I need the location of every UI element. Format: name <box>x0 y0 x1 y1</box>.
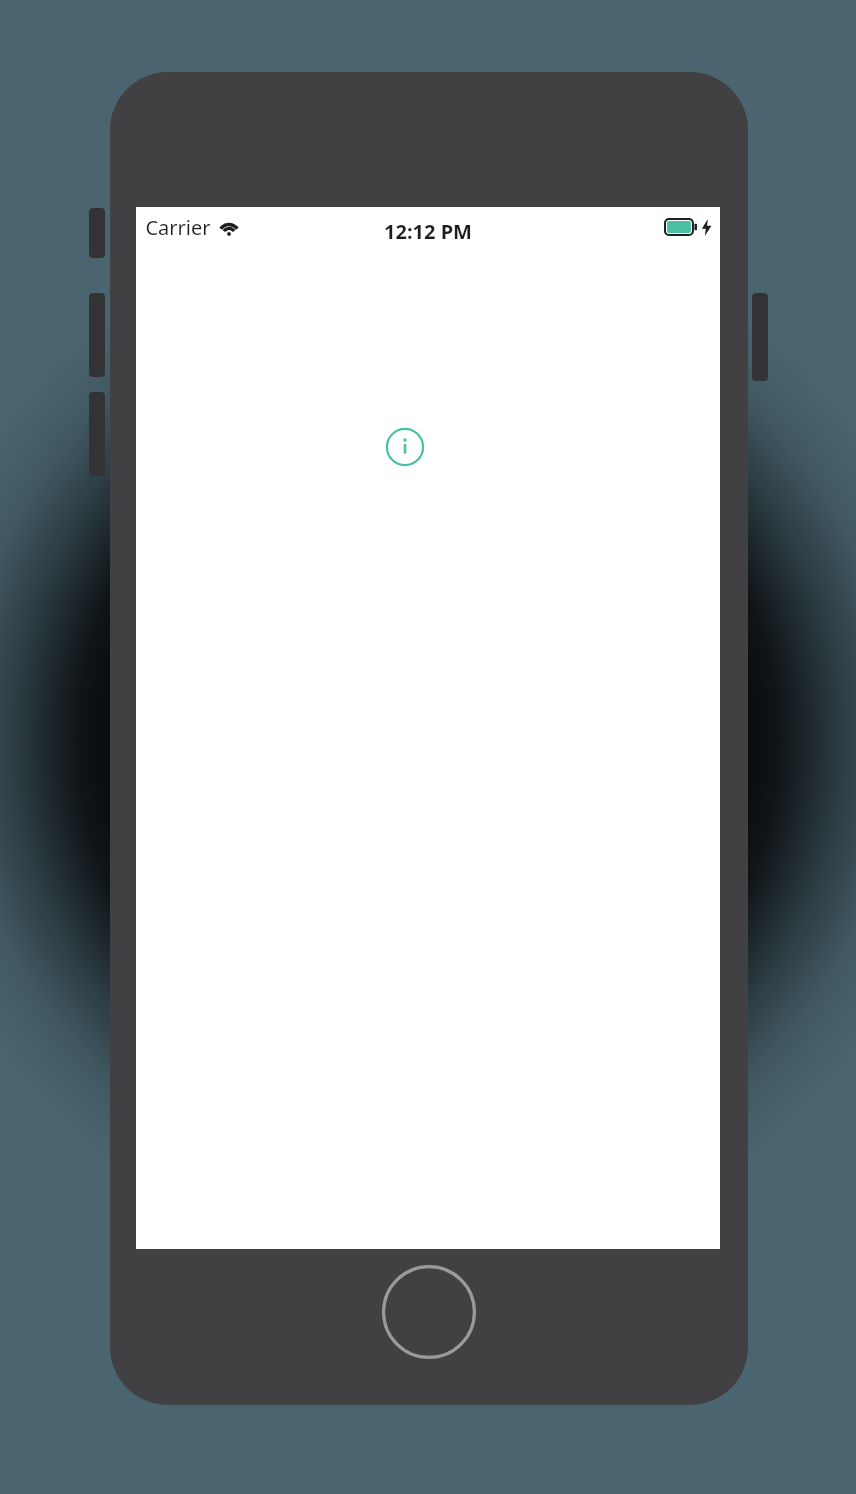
button[interactable]: Home <box>382 1265 476 1359</box>
staticText: Carrier <box>145 214 211 241</box>
button[interactable]: Information <box>381 423 429 471</box>
staticText: 12:12 PM <box>384 218 472 245</box>
